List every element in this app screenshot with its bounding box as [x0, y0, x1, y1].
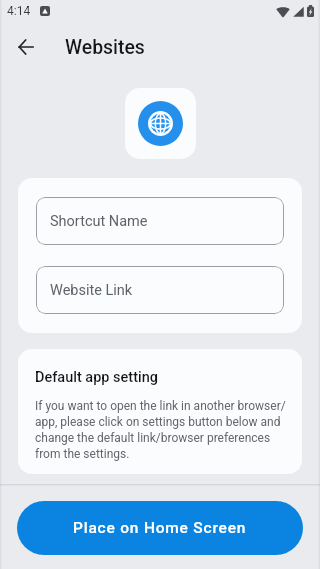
staticText: Place on Home Screen [73, 519, 247, 537]
button[interactable]: Website Link [36, 266, 284, 314]
staticText: If you want to open the link in another … [35, 399, 287, 460]
staticText: Websites [65, 36, 145, 59]
button[interactable]: Place on Home Screen [17, 501, 303, 555]
staticText: Default app setting [35, 369, 158, 386]
button[interactable]: Website icon [125, 88, 196, 159]
button[interactable]: Shortcut Name [36, 197, 284, 245]
staticText: Website Link [50, 282, 133, 299]
staticText: 4:14 [7, 4, 31, 18]
staticText: Shortcut Name [50, 213, 148, 230]
button[interactable]: Back [8, 29, 44, 65]
